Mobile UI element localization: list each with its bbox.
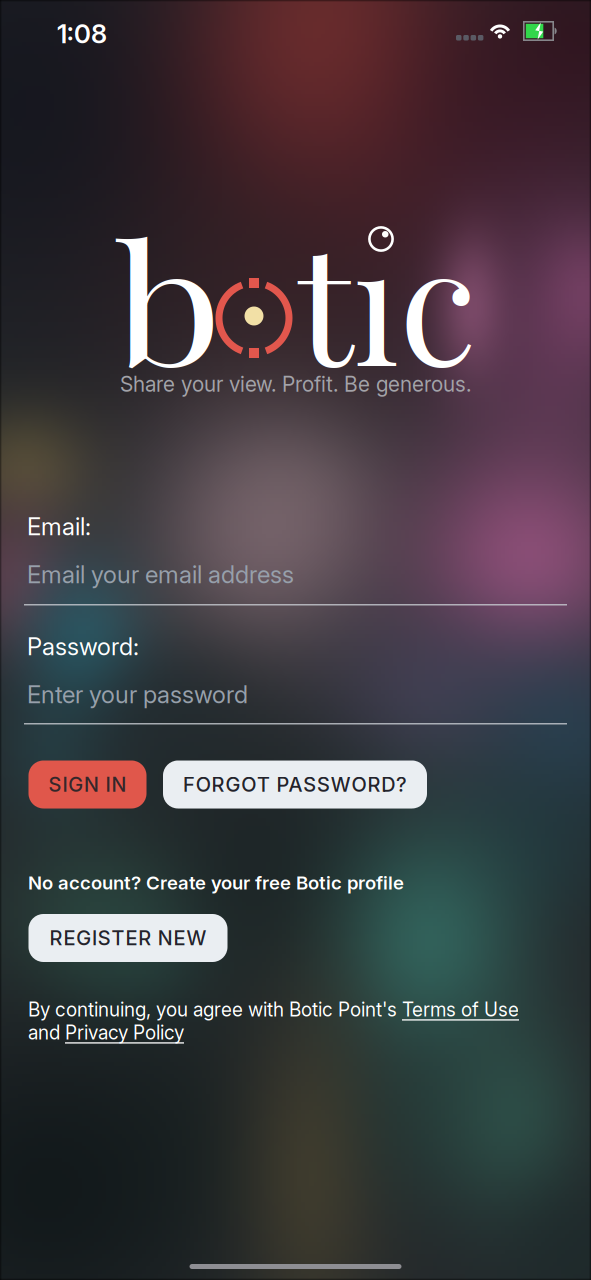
staticText: Email your email address bbox=[27, 560, 294, 589]
staticText: Terms of Use bbox=[402, 998, 519, 1021]
image bbox=[0, 0, 591, 1280]
staticText: and bbox=[28, 1021, 65, 1044]
button[interactable]: REGISTER NEW bbox=[28, 914, 227, 962]
staticText: By continuing, you agree with Botic Poin… bbox=[28, 998, 402, 1021]
staticText: Privacy Policy bbox=[65, 1021, 184, 1044]
button[interactable]: FORGOT PASSWORD? bbox=[163, 760, 427, 808]
staticText: b bbox=[115, 187, 208, 407]
staticText: REGISTER NEW bbox=[50, 926, 206, 950]
staticText: 1:08 bbox=[57, 18, 107, 49]
staticText: SIGN IN bbox=[49, 772, 126, 797]
staticText: Enter your password bbox=[27, 680, 248, 709]
staticText: No account? Create your free Botic profi… bbox=[28, 871, 404, 894]
button[interactable]: Terms of Use bbox=[402, 998, 519, 1021]
staticText: Password: bbox=[27, 632, 139, 661]
staticText: tıc bbox=[297, 187, 483, 407]
staticText: Share your view. Profit. Be generous. bbox=[120, 371, 471, 397]
button[interactable]: SIGN IN bbox=[28, 760, 146, 808]
staticText: FORGOT PASSWORD? bbox=[183, 772, 407, 797]
staticText: Email: bbox=[27, 512, 91, 541]
button[interactable]: Privacy Policy bbox=[65, 1021, 184, 1044]
